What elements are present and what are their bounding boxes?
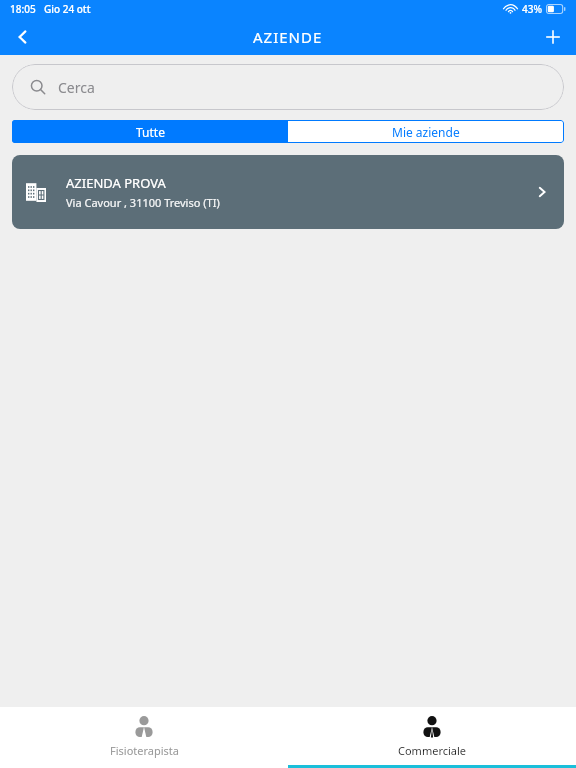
- staticText: Gio 24 ott: [44, 2, 91, 16]
- button[interactable]: Tutte: [12, 120, 288, 143]
- staticText: AZIENDA PROVA: [66, 174, 166, 192]
- button[interactable]: Mie aziende: [288, 120, 564, 143]
- button[interactable]: AZIENDA PROVA: [12, 155, 564, 229]
- staticText: Fisioterapista: [110, 743, 179, 758]
- staticText: 43%: [522, 2, 542, 16]
- staticText: Mie aziende: [392, 124, 460, 140]
- staticText: Tutte: [136, 124, 165, 140]
- staticText: 18:05: [10, 2, 36, 16]
- button[interactable]: Add: [530, 18, 576, 55]
- button[interactable]: Cerca: [12, 64, 564, 110]
- staticText: Cerca: [58, 78, 95, 97]
- button[interactable]: Fisioterapista: [0, 707, 288, 768]
- staticText: AZIENDE: [253, 27, 323, 47]
- button[interactable]: Back: [0, 18, 46, 55]
- button[interactable]: Commerciale: [288, 707, 576, 768]
- staticText: Via Cavour , 31100 Treviso (TI): [66, 195, 220, 210]
- staticText: Commerciale: [398, 743, 467, 758]
